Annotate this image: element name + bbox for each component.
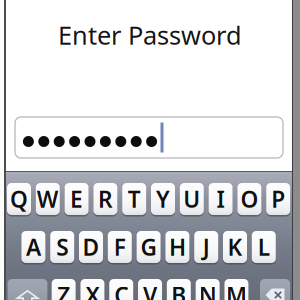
button[interactable]: E [63,181,90,217]
staticText: D [82,232,99,262]
staticText: M [226,280,247,300]
staticText: O [240,184,258,214]
button[interactable]: J [193,229,220,265]
staticText: R [98,184,113,214]
button[interactable]: Y [149,181,176,217]
button[interactable]: W [34,181,61,217]
button[interactable]: L [250,229,277,265]
staticText: Q [10,184,28,214]
staticText: E [70,184,83,214]
button[interactable]: C [108,277,135,300]
staticText: J [203,232,210,262]
button[interactable]: I [207,181,234,217]
button[interactable]: K [221,229,248,265]
staticText: F [114,232,126,262]
button[interactable]: G [135,229,162,265]
staticText: T [128,184,141,214]
button[interactable]: T [121,181,148,217]
button[interactable]: H [164,229,191,265]
button[interactable]: Shift [6,277,49,300]
button[interactable]: A [20,229,47,265]
staticText: S [56,232,68,262]
button[interactable]: P [265,181,292,217]
button[interactable]: O [236,181,263,217]
button[interactable]: R [92,181,119,217]
staticText: Z [57,280,70,300]
staticText: H [169,232,186,262]
button[interactable]: Delete [258,277,291,300]
staticText: N [199,280,217,300]
button[interactable]: Z [50,277,77,300]
staticText: U [183,184,200,214]
button[interactable]: X [79,277,106,300]
staticText: Enter Password [58,18,242,52]
staticText: P [271,184,285,214]
staticText: L [258,232,270,262]
staticText: V [143,280,157,300]
staticText: A [26,232,41,262]
button[interactable]: B [165,277,192,300]
button[interactable]: U [178,181,205,217]
staticText: X [85,280,99,300]
button[interactable]: D [77,229,104,265]
button[interactable]: N [194,277,221,300]
button[interactable]: M [223,277,250,300]
staticText: B [171,280,186,300]
staticText: K [227,232,242,262]
button[interactable]: V [136,277,163,300]
staticText: G [141,232,157,262]
staticText: I [217,184,225,214]
button[interactable]: Q [5,181,32,217]
button[interactable]: S [49,229,76,265]
button[interactable]: F [106,229,133,265]
staticText: Y [156,184,170,214]
staticText: W [37,184,59,214]
staticText: C [114,280,128,300]
